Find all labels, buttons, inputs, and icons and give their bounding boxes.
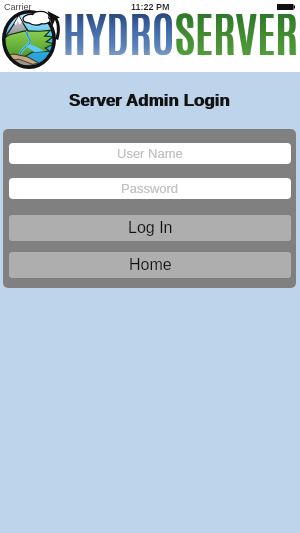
- staticText: HYDRO: [62, 1, 174, 62]
- staticText: SERVER: [175, 1, 299, 62]
- staticText: Server Admin Login: [0, 91, 299, 110]
- staticText: Password: [121, 181, 179, 196]
- staticText: HYDRO: [63, 1, 175, 62]
- other: HydroServer logo: [2, 10, 56, 69]
- staticText: User Name: [117, 146, 183, 161]
- staticText: Carrier: [4, 2, 32, 12]
- staticText: 11:22 PM: [131, 2, 170, 12]
- button[interactable]: User Name: [9, 143, 291, 164]
- button[interactable]: Log In: [9, 215, 291, 241]
- staticText: Home: [129, 256, 172, 274]
- staticText: Log In: [128, 219, 173, 237]
- staticText: Server Admin Login: [0, 91, 300, 110]
- button[interactable]: Home: [9, 252, 291, 278]
- staticText: SERVER: [174, 1, 298, 62]
- other: Battery full: [277, 4, 295, 10]
- button[interactable]: Password: [9, 178, 291, 199]
